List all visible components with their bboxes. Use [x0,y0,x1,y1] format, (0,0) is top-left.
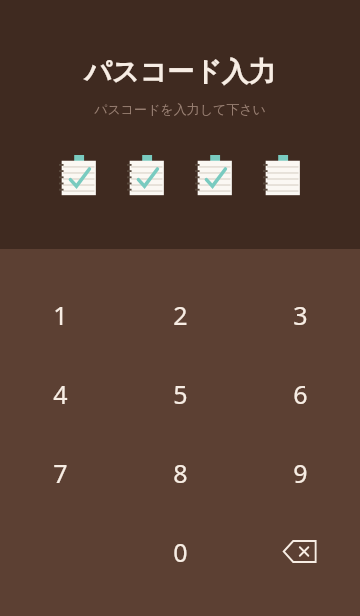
button[interactable]: 3 [240,275,360,354]
staticText: パスコード入力 [84,55,276,89]
staticText: 3 [293,298,308,332]
staticText: 7 [53,456,68,490]
staticText: 6 [293,377,308,411]
button[interactable]: 2 [120,275,240,354]
staticText: 1 [53,298,68,332]
staticText: パスコードを入力して下さい [94,101,266,117]
button[interactable]: Backspace [240,512,360,591]
button[interactable]: 9 [240,433,360,512]
staticText: 5 [173,377,188,411]
button[interactable]: 8 [120,433,240,512]
button[interactable]: 0 [120,512,240,591]
button[interactable]: 4 [0,354,120,433]
button[interactable]: 7 [0,433,120,512]
staticText: 2 [173,298,188,332]
button[interactable]: 5 [120,354,240,433]
staticText: 0 [173,535,188,569]
button[interactable]: 1 [0,275,120,354]
staticText: 4 [53,377,68,411]
button[interactable]: 6 [240,354,360,433]
staticText: 9 [293,456,308,490]
staticText: 8 [173,456,188,490]
